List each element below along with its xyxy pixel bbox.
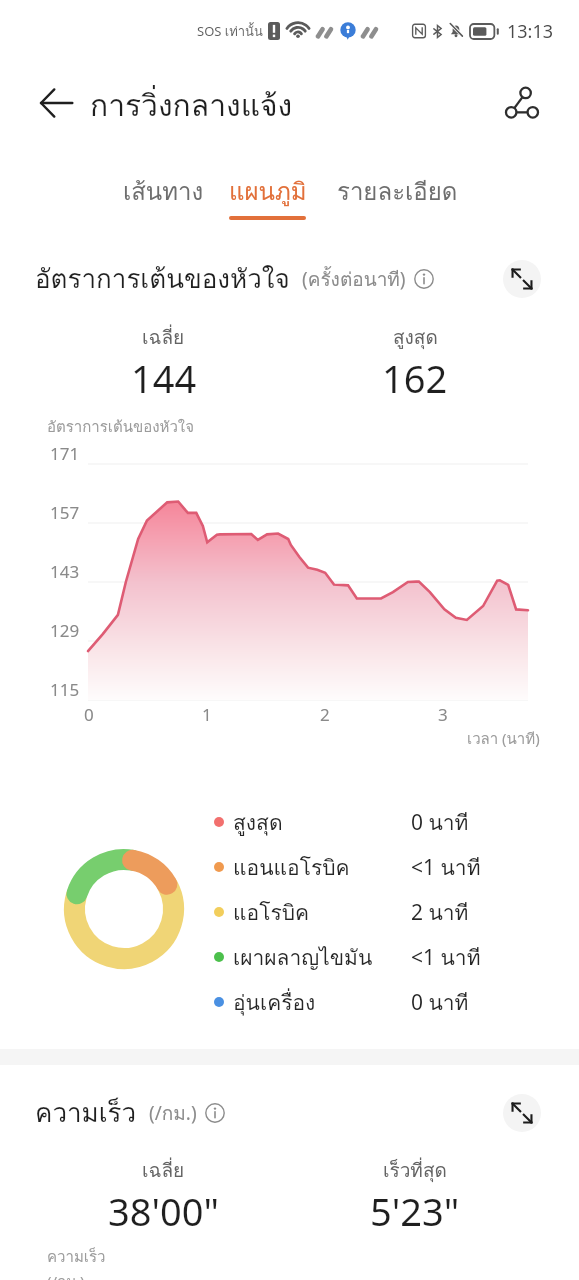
staticText: อุ่นเครื่อง [233,986,316,1019]
staticText: 144 [131,352,197,404]
staticText: 1 [202,703,212,726]
staticText: (/กม.) [149,1098,197,1128]
staticText: 0 นาที [411,806,469,839]
staticText: <1 นาที [411,941,481,974]
staticText: การวิ่งกลางแจ้ง [90,82,293,130]
button[interactable]: Expand chart [503,1094,541,1132]
button[interactable]: Back [32,79,80,127]
staticText: อัตราการเต้นของหัวใจ [35,258,290,299]
staticText: เวลา (นาที) [467,727,540,751]
staticText: เส้นทาง [123,172,204,210]
staticText: เผาผลาญไขมัน [233,941,373,974]
staticText: รายละเอียด [337,172,458,210]
button[interactable]: รายละเอียด [327,172,467,216]
staticText: 129 [50,619,80,642]
staticText: แอนแอโรบิค [233,851,350,884]
staticText: 2 [320,703,330,726]
staticText: อัตราการเต้นของหัวใจ [47,415,194,439]
staticText: 115 [50,678,80,701]
staticText: เฉลี่ย [142,322,185,352]
staticText: <1 นาที [411,851,481,884]
staticText: 171 [50,442,80,465]
staticText: เร็วที่สุด [383,1155,447,1185]
button[interactable]: Expand chart [503,260,541,298]
staticText: (/กม.) [47,1270,85,1280]
staticText: 0 [84,703,94,726]
staticText: แอโรบิค [233,896,310,929]
staticText: เฉลี่ย [142,1155,185,1185]
staticText: 2 นาที [411,896,469,929]
staticText: ความเร็ว [47,1245,106,1269]
staticText: (ครั้งต่อนาที) [302,264,406,294]
staticText: 13:13 [507,19,554,43]
staticText: แผนภูมิ [229,172,307,210]
staticText: 38'00" [108,1185,219,1237]
staticText: สูงสุด [393,322,438,352]
staticText: 3 [438,703,448,726]
staticText: ความเร็ว [35,1092,137,1133]
staticText: 0 นาที [411,986,469,1019]
button[interactable]: Share [497,78,547,128]
button[interactable]: เส้นทาง [113,172,213,216]
staticText: 143 [50,560,80,583]
button[interactable]: แผนภูมิ [220,172,315,220]
staticText: SOS เท่านั้น [197,21,263,42]
staticText: 162 [382,352,448,404]
staticText: 5'23" [370,1185,460,1237]
staticText: สูงสุด [233,806,283,839]
staticText: 157 [50,501,80,524]
